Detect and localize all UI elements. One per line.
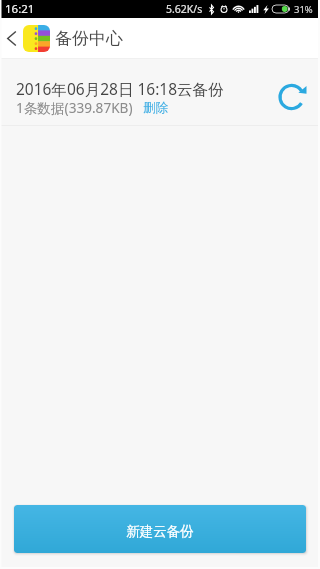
staticText: 31% xyxy=(294,3,313,16)
staticText: 5.62K/s xyxy=(166,2,203,16)
button[interactable]: Back xyxy=(0,18,23,59)
button[interactable]: 2016年06月28日 16:18云备份 xyxy=(0,59,320,125)
staticText: 删除 xyxy=(143,100,168,116)
staticText: 新建云备份 xyxy=(126,523,194,540)
staticText: 2016年06月28日 16:18云备份 xyxy=(16,78,224,99)
staticText: 1条数据(339.87KB) xyxy=(16,98,133,117)
button[interactable]: 删除 xyxy=(141,99,170,117)
button[interactable]: Refresh xyxy=(272,77,312,117)
button[interactable]: 新建云备份 xyxy=(14,505,306,553)
staticText: 16:21 xyxy=(5,1,35,17)
staticText: 备份中心 xyxy=(55,28,123,49)
